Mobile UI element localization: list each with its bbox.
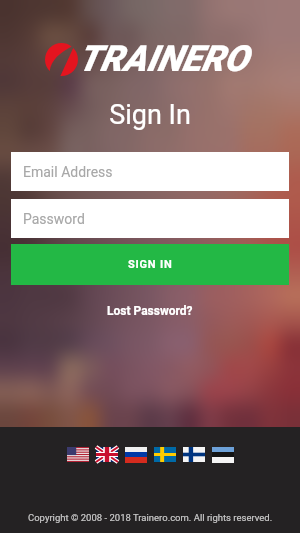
staticText: Copyright © 2008 - 2018 Trainero.com. Al… [28, 512, 273, 523]
button[interactable]: English [67, 447, 89, 462]
button[interactable]: Russian [125, 447, 147, 462]
button[interactable]: British English [96, 447, 118, 462]
staticText: Password [23, 211, 85, 227]
button[interactable]: Estonian [212, 447, 234, 462]
staticText: Sign In [0, 99, 300, 131]
button[interactable]: SIGN IN [11, 244, 289, 285]
button[interactable]: Lost Password? [103, 302, 197, 320]
button[interactable]: Finnish [183, 447, 205, 462]
staticText: Email Address [23, 164, 113, 180]
button[interactable]: Swedish [154, 447, 176, 462]
button[interactable]: Email Address [11, 152, 289, 191]
button[interactable]: Password [11, 199, 289, 238]
staticText: SIGN IN [128, 258, 173, 271]
staticText: TRAINERO [78, 38, 249, 80]
